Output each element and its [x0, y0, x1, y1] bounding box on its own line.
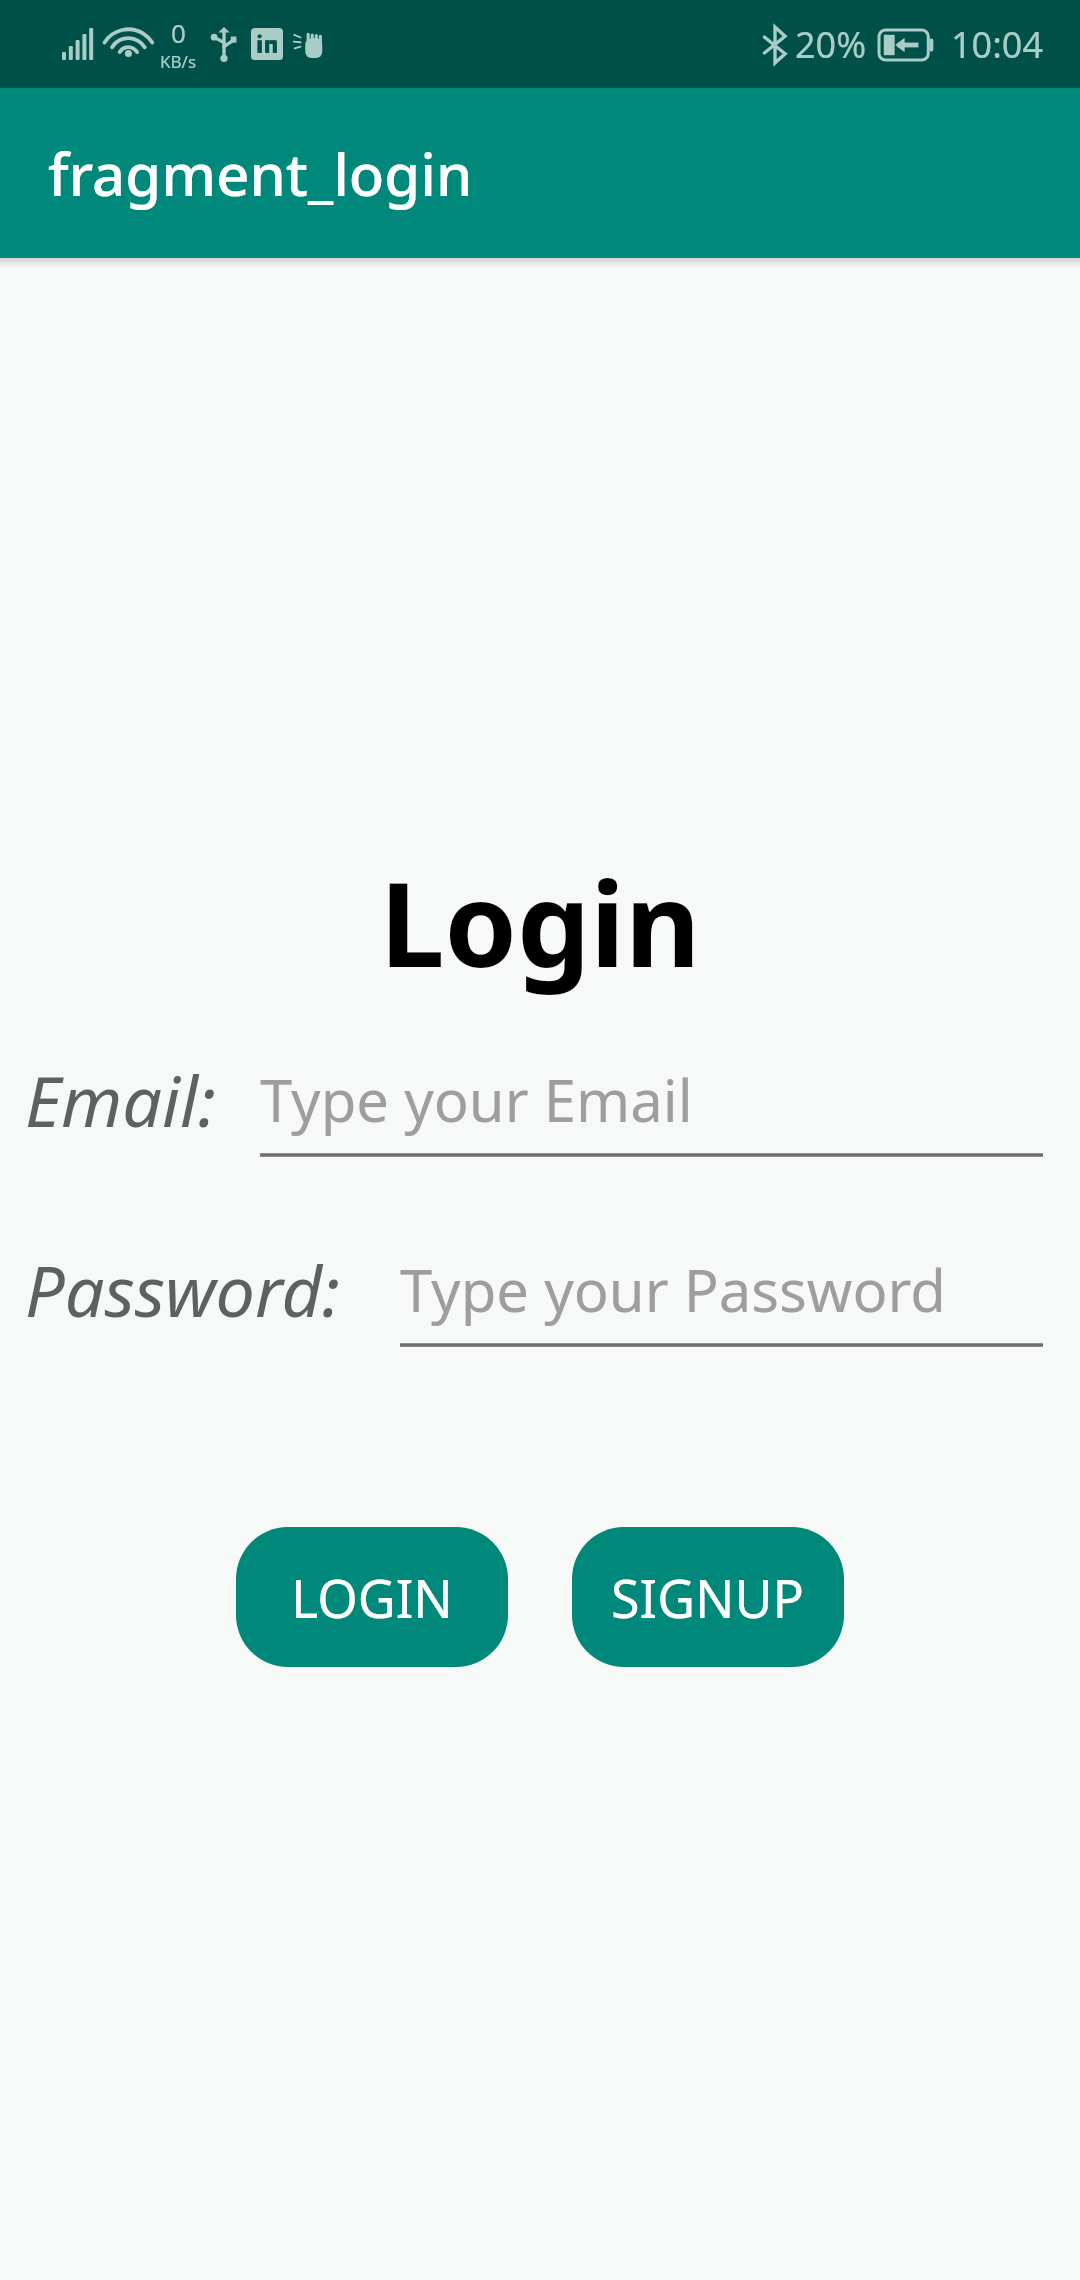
staticText: 20% — [795, 20, 867, 69]
staticText: Password: — [25, 1242, 340, 1337]
staticText: KB/s — [160, 50, 197, 73]
staticText: Type your Email — [260, 1060, 693, 1139]
staticText: 10:04 — [951, 20, 1044, 69]
staticText: Email: — [25, 1052, 217, 1147]
button[interactable]: Password input — [400, 1238, 1043, 1348]
staticText: fragment_login — [48, 134, 473, 213]
staticText: SIGNUP — [611, 1562, 805, 1633]
button[interactable]: LOGIN — [236, 1527, 508, 1667]
button[interactable]: SIGNUP — [572, 1527, 844, 1667]
staticText: 0 — [171, 15, 186, 50]
button[interactable]: Email input — [260, 1048, 1043, 1158]
staticText: Login — [0, 843, 1080, 1001]
staticText: Type your Password — [400, 1250, 947, 1329]
staticText: LOGIN — [291, 1562, 453, 1633]
